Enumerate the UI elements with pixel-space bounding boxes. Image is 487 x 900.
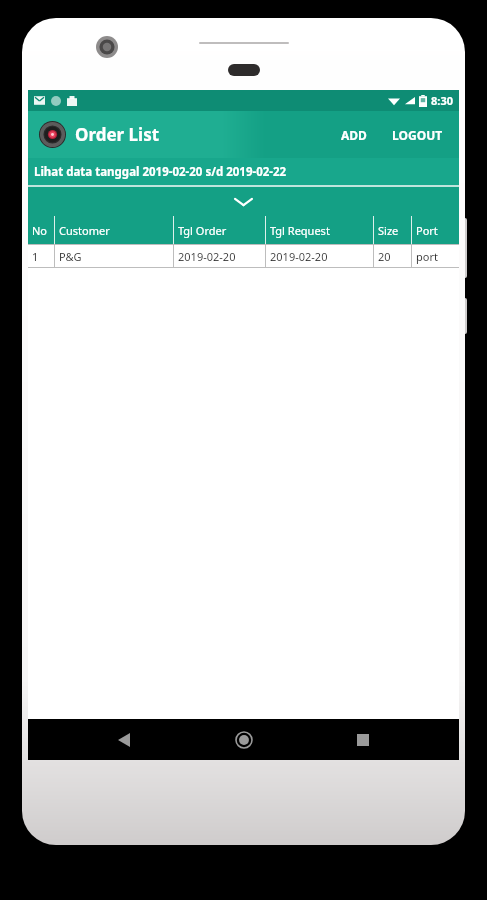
staticText: LOGOUT (392, 127, 443, 143)
staticText: Order List (75, 123, 160, 146)
button[interactable]: Back (100, 719, 148, 760)
staticText: 20 (378, 249, 391, 264)
button[interactable]: Expand filters (28, 187, 459, 216)
button[interactable]: Recent apps (339, 719, 387, 760)
staticText: 2019-02-20 (270, 249, 328, 264)
staticText: 1 (32, 249, 39, 264)
button[interactable]: Lihat data tanggal 2019-02-20 s/d 2019-0… (28, 158, 459, 185)
button[interactable]: LOGOUT (384, 120, 451, 150)
staticText: Port (416, 223, 438, 238)
button[interactable]: ADD (333, 120, 375, 150)
other: App logo (39, 121, 66, 148)
staticText: Size (378, 223, 399, 238)
staticText: ADD (341, 127, 367, 143)
button[interactable]: Home (220, 719, 268, 760)
staticText: P&G (59, 249, 82, 264)
staticText: 2019-02-20 (178, 249, 236, 264)
staticText: No (32, 223, 48, 238)
button[interactable]: 1 (28, 245, 459, 267)
staticText: Tgl Order (178, 223, 227, 238)
staticText: Customer (59, 223, 110, 238)
staticText: port (416, 249, 438, 264)
staticText: Tgl Request (270, 223, 330, 238)
staticText: Lihat data tanggal 2019-02-20 s/d 2019-0… (34, 164, 287, 180)
staticText: 8:30 (431, 93, 453, 108)
